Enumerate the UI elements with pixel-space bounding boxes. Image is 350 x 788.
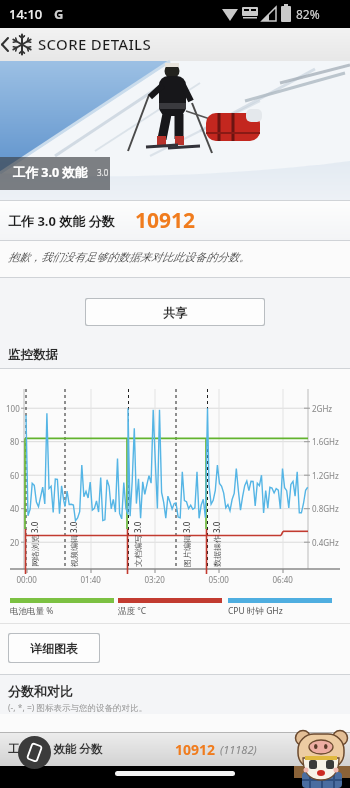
staticText: 电池电量 % — [10, 605, 54, 617]
staticText: 3.0 — [97, 167, 109, 178]
staticText: (11182) — [220, 742, 257, 757]
staticText: 抱歉，我们没有足够的数据来对比此设备的分数。 — [8, 250, 250, 264]
button[interactable]: 工作 3.0 效能 分数 — [0, 732, 350, 766]
staticText: 共享 — [163, 305, 187, 320]
staticText: 14:10 — [9, 5, 43, 23]
staticText: 详细图表 — [30, 641, 78, 656]
button[interactable]: SCORE DETAILS — [38, 34, 151, 54]
button[interactable]: 详细图表 — [9, 634, 99, 662]
button[interactable] — [18, 736, 51, 769]
button[interactable]: 共享 — [86, 299, 264, 325]
staticText: 温度 °C — [118, 605, 147, 617]
staticText: CPU 时钟 GHz — [228, 605, 283, 617]
staticText: 监控数据 — [8, 347, 58, 363]
staticText: 分数和对比 — [8, 683, 73, 699]
staticText: 工作 3.0 效能 分数 — [8, 212, 115, 230]
staticText: 工作 3.0 效能 — [13, 164, 88, 181]
staticText: 10912 — [135, 206, 196, 235]
staticText: 10912 — [175, 740, 216, 759]
staticText: G — [54, 5, 64, 23]
staticText: 82% — [296, 6, 320, 22]
staticText: (-, *, =) 图标表示与您的设备的对比。 — [8, 702, 148, 714]
staticText: 工作 3.0 效能 分数 — [8, 741, 103, 757]
